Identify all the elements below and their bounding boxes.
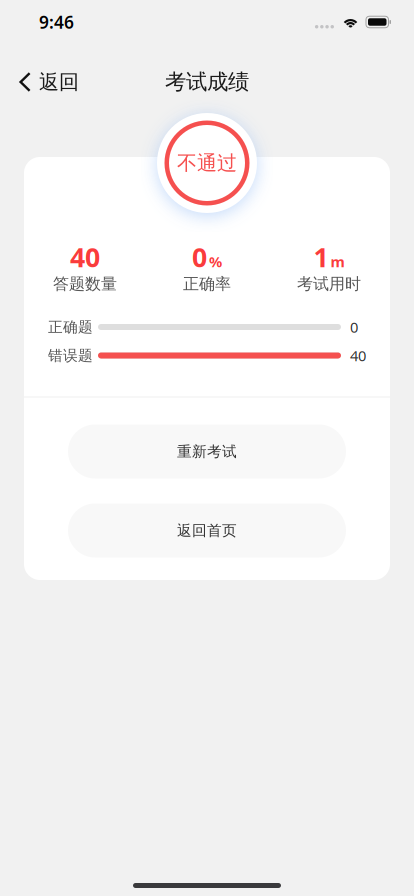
staticText: 40	[70, 239, 100, 275]
staticText: 答题数量	[53, 274, 117, 294]
staticText: %	[209, 252, 222, 271]
button[interactable]: 返回首页	[68, 503, 346, 557]
staticText: 考试成绩	[165, 69, 249, 95]
staticText: 重新考试	[177, 442, 237, 460]
button[interactable]: 返回	[0, 60, 91, 104]
staticText: 返回首页	[177, 521, 237, 539]
staticText: 错误题	[48, 346, 93, 364]
staticText: 考试用时	[297, 274, 361, 294]
staticText: 0	[350, 317, 358, 337]
button[interactable]: 重新考试	[68, 424, 346, 478]
staticText: 40	[350, 346, 366, 365]
staticText: m	[330, 252, 344, 271]
staticText: 不通过	[177, 151, 237, 175]
staticText: 返回	[39, 70, 79, 94]
staticText: 正确率	[183, 274, 231, 294]
staticText: 1	[313, 239, 328, 275]
staticText: 9:46	[39, 10, 74, 33]
staticText: 0	[192, 239, 207, 275]
staticText: 正确题	[48, 318, 93, 336]
